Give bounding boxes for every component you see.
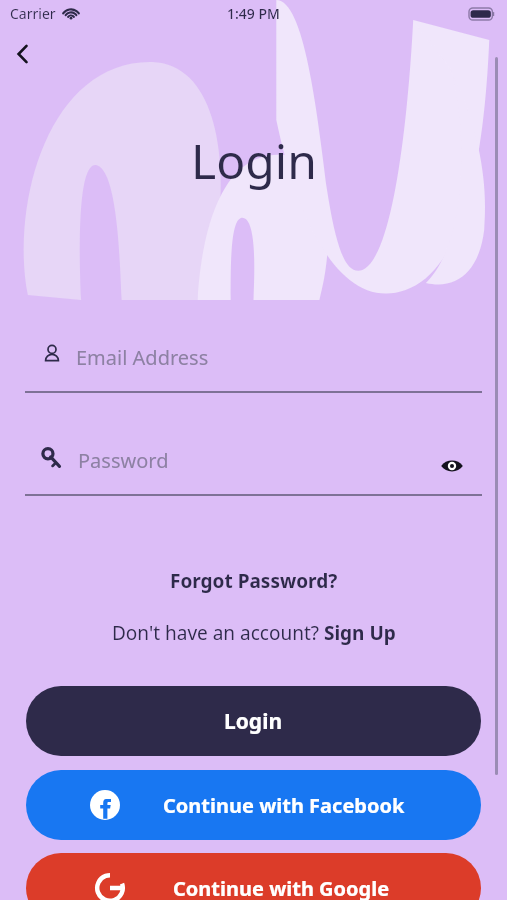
staticText: Continue with Google <box>173 875 390 900</box>
staticText: Login <box>191 128 317 193</box>
button[interactable]: Back <box>2 33 44 75</box>
staticText: Carrier <box>10 4 56 23</box>
button[interactable]: Don't have an account? Sign Up <box>106 618 402 648</box>
button[interactable]: Forgot Password? <box>164 566 344 596</box>
staticText: Forgot Password? <box>170 568 338 594</box>
staticText: Don't have an account? Sign Up <box>112 620 396 646</box>
button[interactable]: Show password <box>432 446 472 486</box>
staticText: Continue with Facebook <box>163 792 405 819</box>
button[interactable]: Password <box>0 436 507 496</box>
staticText: Login <box>224 707 283 736</box>
button[interactable]: Email Address <box>0 333 507 393</box>
staticText: Password <box>78 447 169 474</box>
button[interactable]: Continue with Facebook <box>26 770 481 840</box>
staticText: Email Address <box>76 344 209 371</box>
staticText: 1:49 PM <box>227 4 280 23</box>
button[interactable]: Continue with Google <box>26 853 481 900</box>
button[interactable]: Login <box>26 686 481 756</box>
